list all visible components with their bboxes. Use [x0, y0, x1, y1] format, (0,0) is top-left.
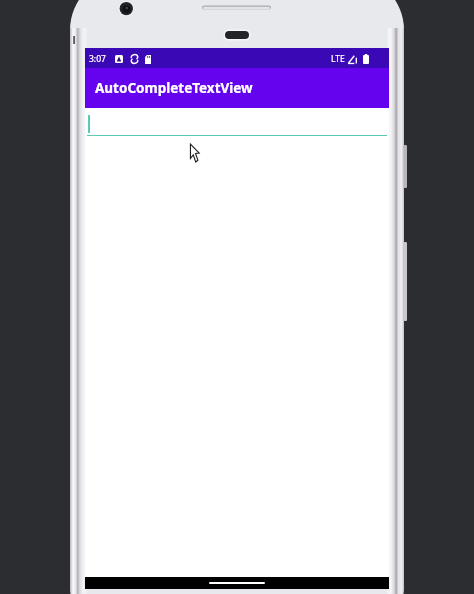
staticText: LTE: [331, 53, 345, 65]
staticText: 3:07: [89, 53, 106, 65]
button[interactable]: [87, 109, 387, 136]
button[interactable]: AutoCompleteTextView: [85, 68, 389, 108]
staticText: AutoCompleteTextView: [95, 79, 253, 97]
